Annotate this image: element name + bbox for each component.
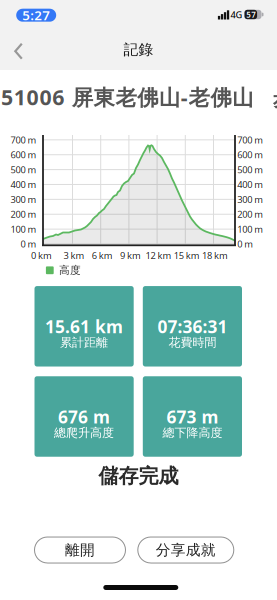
staticText: 100 m — [237, 223, 263, 235]
staticText: 儲存完成 — [98, 464, 178, 488]
staticText: 18 km — [202, 249, 228, 262]
button[interactable]: 分享成就 — [138, 537, 234, 563]
staticText: 300 m — [237, 193, 263, 206]
staticText: 5:27 — [22, 6, 50, 24]
staticText: 0 km — [31, 249, 52, 262]
staticText: 676 m — [58, 405, 110, 428]
staticText: 高度 — [59, 264, 81, 277]
staticText: 記錄 — [123, 40, 153, 58]
staticText: 500 m — [10, 163, 36, 176]
staticText: 0 m — [20, 238, 36, 250]
staticText: 9 km — [120, 249, 141, 262]
button[interactable]: 離開 — [34, 537, 125, 563]
staticText: 0 m — [237, 238, 253, 250]
staticText: 200 m — [237, 208, 263, 220]
staticText: 700 m — [237, 134, 263, 146]
staticText: 總下降高度 — [162, 425, 222, 440]
staticText: 673 m — [166, 405, 218, 428]
staticText: 3 km — [63, 249, 84, 262]
staticText: 12 km — [146, 249, 172, 262]
staticText: 600 m — [237, 148, 263, 161]
staticText: 07:36:31 — [157, 315, 227, 338]
staticText: 花費時間 — [168, 335, 216, 350]
staticText: 500 m — [237, 163, 263, 176]
staticText: 6 km — [92, 249, 113, 262]
staticText: 51006 屏東老佛山-老佛山 步道 — [1, 83, 277, 111]
button[interactable]: Back — [6, 34, 32, 68]
staticText: 總爬升高度 — [54, 425, 114, 440]
button[interactable]: Time 5:27, return to call — [16, 9, 56, 22]
staticText: 300 m — [10, 193, 36, 206]
staticText: 15.61 km — [45, 315, 123, 338]
staticText: 累計距離 — [60, 335, 108, 350]
staticText: 分享成就 — [156, 541, 216, 559]
staticText: 離開 — [65, 541, 95, 559]
staticText: 15 km — [174, 249, 200, 262]
staticText: 700 m — [10, 134, 36, 146]
staticText: 400 m — [10, 178, 36, 191]
staticText: 100 m — [10, 223, 36, 235]
staticText: 4G — [231, 8, 243, 21]
staticText: 400 m — [237, 178, 263, 191]
staticText: 600 m — [10, 148, 36, 161]
staticText: 57 — [246, 9, 256, 20]
staticText: 200 m — [10, 208, 36, 220]
